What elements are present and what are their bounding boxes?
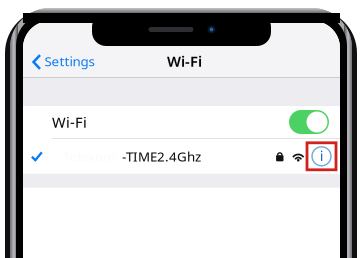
button[interactable]: Telekom <box>23 139 340 174</box>
button[interactable]: Settings <box>23 50 94 78</box>
staticText: Settings <box>44 52 94 70</box>
button[interactable]: Network details <box>307 143 336 170</box>
staticText: i <box>319 146 323 166</box>
staticText: Wi-Fi <box>52 112 87 132</box>
staticText: Wi-Fi <box>167 51 202 71</box>
staticText: -TIME2.4Ghz <box>122 147 201 165</box>
